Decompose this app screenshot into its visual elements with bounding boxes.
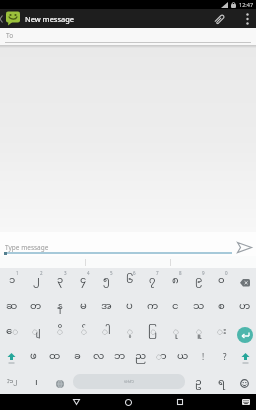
staticText: သ xyxy=(193,300,205,314)
button[interactable]: ိ xyxy=(48,319,72,344)
button[interactable]: ရ xyxy=(210,369,233,394)
button[interactable]: ါ xyxy=(95,319,118,344)
button[interactable]: ၆ xyxy=(118,268,141,294)
staticText: လ xyxy=(93,350,105,364)
button[interactable] xyxy=(120,394,136,410)
button[interactable] xyxy=(48,369,71,394)
staticText: တ xyxy=(30,300,42,314)
staticText: 9 xyxy=(202,270,205,276)
button[interactable]: မ xyxy=(72,294,95,319)
staticText: 2 xyxy=(40,270,43,276)
staticText: 8 xyxy=(179,270,182,276)
button[interactable]: စ xyxy=(210,294,233,319)
staticText: New message xyxy=(25,14,75,24)
staticText: ဆ xyxy=(6,300,18,314)
staticText: ရ xyxy=(218,376,225,390)
staticText: ၁ xyxy=(9,274,16,288)
button[interactable] xyxy=(233,319,256,344)
button[interactable]: ည xyxy=(130,344,151,369)
button[interactable]: ဘ xyxy=(109,344,130,369)
button[interactable]: ြ xyxy=(141,319,164,344)
button[interactable]: ၈ xyxy=(164,268,187,294)
staticText: ည xyxy=(135,350,147,364)
button[interactable]: ာ xyxy=(151,344,172,369)
button[interactable]: ့ xyxy=(118,319,141,344)
staticText: ! xyxy=(202,351,205,362)
button[interactable]: ၇ xyxy=(141,268,164,294)
button[interactable]: ?၁၂ xyxy=(0,369,24,394)
staticText: 0 xyxy=(225,270,228,276)
staticText: က xyxy=(147,300,159,314)
staticText: ?၁၂ xyxy=(7,378,18,386)
staticText: ၊ xyxy=(35,376,38,390)
button[interactable]: ၀ xyxy=(210,268,233,294)
button[interactable] xyxy=(233,369,256,394)
button[interactable]: ၃ xyxy=(48,268,72,294)
button[interactable]: ၁ xyxy=(0,268,24,294)
button[interactable]: လ xyxy=(88,344,109,369)
button[interactable]: ျ xyxy=(24,319,48,344)
staticText: န xyxy=(57,300,63,314)
button[interactable]: ဟ xyxy=(233,294,256,319)
button[interactable] xyxy=(172,394,188,410)
button[interactable]: To xyxy=(0,28,256,45)
button[interactable]: ဥ xyxy=(187,369,210,394)
staticText: ထ xyxy=(49,350,61,364)
staticText: ိ xyxy=(57,325,63,339)
staticText: င xyxy=(172,300,179,314)
button[interactable]: တ xyxy=(24,294,48,319)
button[interactable]: သ xyxy=(187,294,210,319)
button[interactable]: ၄ xyxy=(72,268,95,294)
staticText: 3 xyxy=(64,270,67,276)
staticText: ဗမာ xyxy=(124,378,134,385)
button[interactable]: ဖ xyxy=(22,344,44,369)
staticText: ပ xyxy=(126,300,133,314)
staticText: ? xyxy=(223,351,227,362)
staticText: ယ xyxy=(177,350,189,364)
staticText: ဥ xyxy=(195,376,202,390)
button[interactable] xyxy=(240,9,254,28)
button[interactable]: ူ xyxy=(187,319,210,344)
button[interactable]: ၉ xyxy=(187,268,210,294)
staticText: ြ xyxy=(148,325,157,339)
staticText: ဟ xyxy=(239,300,251,314)
button[interactable]: ဆ xyxy=(0,294,24,319)
button[interactable]: ၂ xyxy=(24,268,48,294)
button[interactable]: ! xyxy=(193,344,214,369)
button[interactable]: New message xyxy=(0,9,256,28)
staticText: ၀ xyxy=(218,274,225,288)
button[interactable]: ပ xyxy=(118,294,141,319)
staticText: ၈ xyxy=(172,274,179,288)
button[interactable]: ခ xyxy=(66,344,88,369)
button[interactable] xyxy=(238,394,254,410)
staticText: Type message xyxy=(5,243,49,252)
button[interactable] xyxy=(210,9,230,28)
button[interactable]: ု xyxy=(164,319,187,344)
button[interactable]: င xyxy=(164,294,187,319)
staticText: ် xyxy=(81,325,87,339)
staticText: စ xyxy=(218,300,225,314)
button[interactable] xyxy=(235,344,256,369)
button[interactable] xyxy=(233,268,256,294)
button[interactable]: ၅ xyxy=(95,268,118,294)
button[interactable]: ် xyxy=(72,319,95,344)
staticText: 7 xyxy=(156,270,159,276)
button[interactable]: အ xyxy=(95,294,118,319)
staticText: ဖ xyxy=(30,350,37,364)
button[interactable]: ၊ xyxy=(24,369,48,394)
button[interactable]: ? xyxy=(214,344,235,369)
button[interactable]: ေ xyxy=(0,319,24,344)
button[interactable]: း xyxy=(210,319,233,344)
staticText: း xyxy=(217,325,227,339)
button[interactable]: န xyxy=(48,294,72,319)
staticText: ဘ xyxy=(114,350,126,364)
staticText: 6 xyxy=(133,270,136,276)
button[interactable] xyxy=(235,238,253,256)
staticText: ေ xyxy=(6,325,19,339)
button[interactable] xyxy=(0,344,22,369)
button[interactable] xyxy=(68,394,84,410)
button[interactable]: ယ xyxy=(172,344,193,369)
button[interactable]: ထ xyxy=(44,344,66,369)
button[interactable]: က xyxy=(141,294,164,319)
button[interactable]: ဗမာ xyxy=(73,374,185,389)
